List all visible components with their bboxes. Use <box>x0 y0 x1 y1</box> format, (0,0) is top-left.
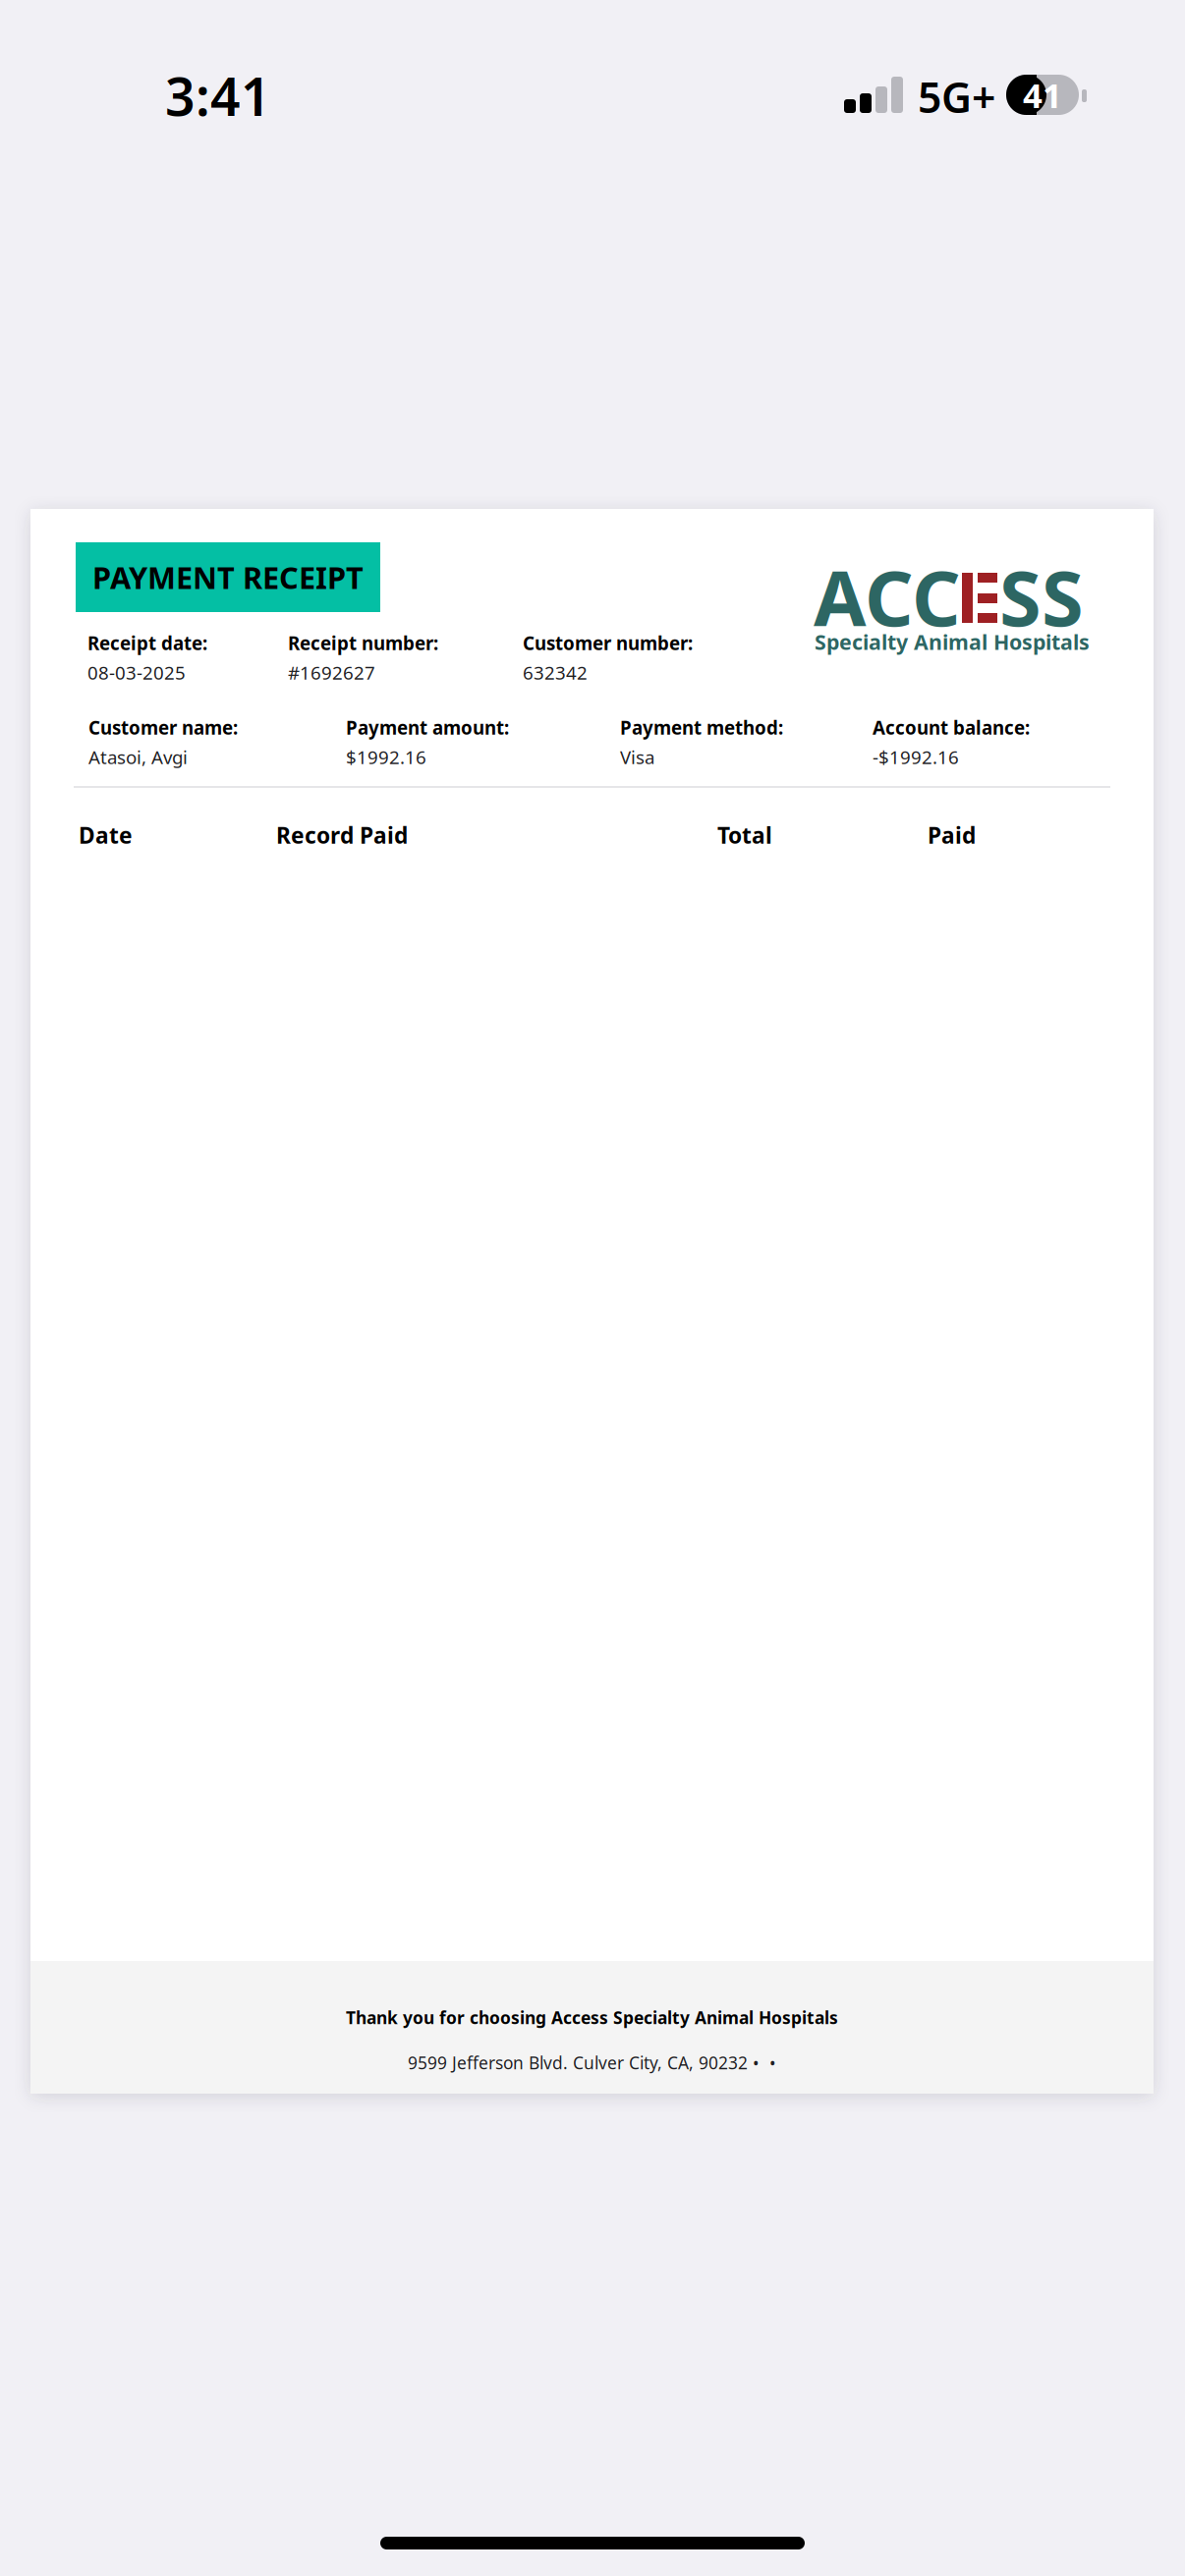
staticText: Receipt date: <box>87 631 207 655</box>
staticText: 9599 Jefferson Blvd. Culver City, CA, 90… <box>408 2051 776 2074</box>
staticText: #1692627 <box>288 660 375 685</box>
staticText: 5G+ <box>918 69 995 124</box>
staticText: Visa <box>620 745 654 769</box>
staticText: 632342 <box>523 660 588 685</box>
staticText: Paid <box>928 820 976 850</box>
staticText: $1992.16 <box>346 745 426 769</box>
staticText: 08-03-2025 <box>87 660 186 685</box>
staticText: Total <box>717 820 772 850</box>
staticText: -$1992.16 <box>873 745 959 769</box>
staticText: Atasoi, Avgi <box>88 745 188 769</box>
staticText: Account balance: <box>873 715 1030 740</box>
staticText: Payment amount: <box>346 715 509 740</box>
staticText: Customer number: <box>523 631 693 655</box>
staticText: SS <box>999 546 1084 647</box>
staticText: Receipt number: <box>288 631 438 655</box>
staticText: Thank you for choosing Access Specialty … <box>346 2006 838 2029</box>
staticText: 41 <box>1023 72 1062 117</box>
staticText: Payment method: <box>620 715 783 740</box>
staticText: 3:41 <box>165 61 271 130</box>
staticText: Record Paid <box>276 820 408 850</box>
button[interactable]: PAYMENT RECEIPT <box>76 542 380 612</box>
staticText: PAYMENT RECEIPT <box>92 557 364 597</box>
staticText: ACC <box>814 546 961 647</box>
staticText: Date <box>79 820 133 850</box>
staticText: Specialty Animal Hospitals <box>815 628 1090 656</box>
staticText: Customer name: <box>88 715 238 740</box>
